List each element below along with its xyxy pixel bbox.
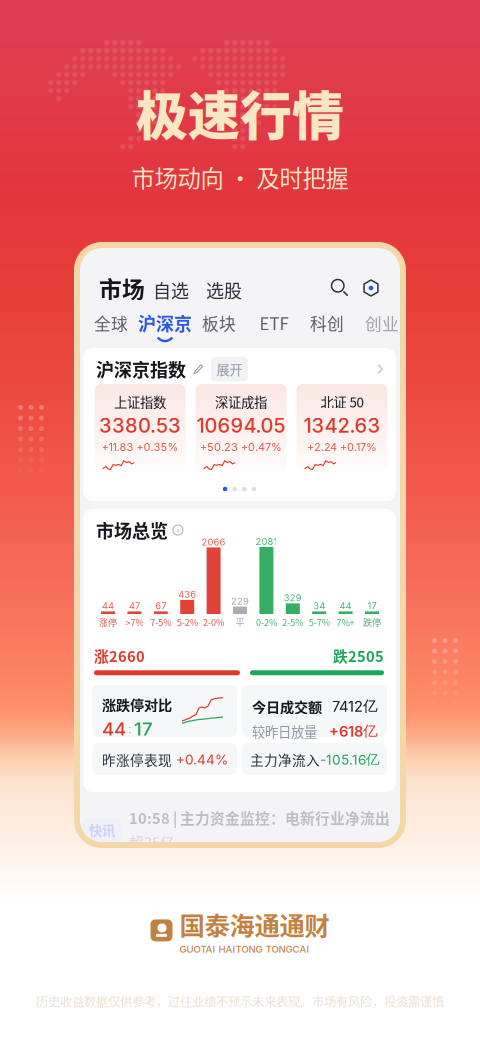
staticText: 44 bbox=[340, 600, 352, 612]
staticText: 10:58 | 主力资金监控：电新行业净流出 bbox=[129, 807, 390, 828]
staticText: 自选 bbox=[153, 277, 189, 303]
button[interactable]: 涨跌停对比 bbox=[92, 685, 237, 737]
button[interactable]: 主力净流入 bbox=[242, 743, 387, 775]
button[interactable]: 创业 bbox=[355, 312, 409, 344]
staticText: +2.24 +0.17% bbox=[307, 440, 377, 454]
staticText: 超35亿 bbox=[129, 831, 175, 852]
staticText: 2-5% bbox=[282, 615, 303, 628]
staticText: 7412亿 bbox=[332, 697, 378, 715]
button[interactable]: 自选 bbox=[153, 278, 191, 302]
staticText: 229 bbox=[231, 595, 249, 607]
button[interactable]: 科创 bbox=[300, 312, 354, 344]
staticText: 涨停 bbox=[99, 615, 117, 628]
staticText: 昨涨停表现 bbox=[102, 750, 172, 769]
staticText: 市场总览 bbox=[96, 517, 168, 543]
button[interactable]: 今日成交额 bbox=[242, 685, 387, 737]
staticText: 历史收益数据仅供参考，过往业绩不预示未来表现。市场有风险，投资需谨慎 bbox=[36, 992, 444, 1010]
button[interactable]: 搜索 bbox=[328, 276, 352, 300]
button[interactable]: 昨涨停表现 bbox=[92, 743, 237, 775]
staticText: 10694.05 bbox=[196, 413, 285, 437]
button[interactable]: 展开 bbox=[211, 357, 248, 381]
staticText: 科创 bbox=[310, 311, 344, 335]
staticText: 44 bbox=[102, 600, 114, 612]
staticText: 涨跌停对比 bbox=[102, 694, 172, 714]
staticText: 市场动向 · 及时把握 bbox=[131, 160, 348, 194]
staticText: 436 bbox=[178, 589, 196, 600]
staticText: 34 bbox=[313, 600, 325, 612]
staticText: 67 bbox=[155, 600, 166, 612]
staticText: 深证成指 bbox=[215, 392, 267, 411]
button[interactable]: 深证成指 bbox=[195, 388, 286, 476]
staticText: 主力净流入 bbox=[250, 750, 320, 769]
staticText: 平 bbox=[235, 615, 244, 628]
staticText: 涨2660 bbox=[94, 645, 145, 666]
staticText: 北证 50 bbox=[320, 392, 363, 411]
staticText: 3380.53 bbox=[99, 413, 181, 437]
staticText: 极速行情 bbox=[136, 75, 344, 150]
staticText: GUOTAI HAITONG TONGCAI bbox=[179, 943, 309, 955]
staticText: ETF bbox=[259, 311, 288, 335]
staticText: +11.83 +0.35% bbox=[101, 440, 178, 454]
button[interactable]: 全球 bbox=[84, 312, 138, 344]
staticText: +50.23 +0.47% bbox=[200, 440, 282, 454]
staticText: 创业 bbox=[365, 311, 399, 335]
staticText: 沪深京指数 bbox=[96, 356, 186, 382]
staticText: 1342.63 bbox=[303, 413, 380, 437]
staticText: 17 bbox=[134, 717, 153, 740]
staticText: 7-5% bbox=[150, 615, 171, 628]
staticText: +0.44% bbox=[176, 751, 228, 768]
staticText: -105.16亿 bbox=[320, 751, 380, 768]
staticText: 板块 bbox=[202, 311, 236, 335]
staticText: 选股 bbox=[206, 277, 242, 303]
button[interactable]: 沪深京 bbox=[138, 312, 192, 344]
staticText: 329 bbox=[284, 592, 302, 604]
staticText: 2081 bbox=[255, 536, 277, 547]
staticText: 2-0% bbox=[203, 615, 224, 628]
staticText: 跌2505 bbox=[333, 645, 384, 666]
staticText: 2066 bbox=[202, 536, 226, 548]
staticText: 47 bbox=[129, 600, 140, 612]
button[interactable]: ETF bbox=[247, 312, 301, 344]
staticText: >7% bbox=[125, 615, 143, 628]
staticText: 5-2% bbox=[177, 615, 198, 628]
button[interactable]: 上证指数 bbox=[94, 388, 185, 476]
staticText: : bbox=[128, 721, 132, 737]
staticText: 沪深京 bbox=[138, 310, 192, 336]
staticText: 17 bbox=[367, 600, 376, 612]
staticText: 0-2% bbox=[256, 615, 277, 628]
button[interactable]: 设置 bbox=[359, 276, 383, 300]
staticText: 展开 bbox=[216, 359, 242, 379]
staticText: 44 bbox=[102, 717, 126, 740]
staticText: 快讯 bbox=[89, 820, 115, 839]
staticText: 国泰海通通财 bbox=[179, 906, 329, 942]
staticText: 5-7% bbox=[309, 615, 330, 628]
staticText: +618亿 bbox=[329, 722, 378, 740]
staticText: 上证指数 bbox=[114, 392, 166, 411]
button[interactable]: 市场 bbox=[99, 276, 143, 300]
staticText: 跌停 bbox=[363, 615, 381, 628]
staticText: 较昨日放量 bbox=[252, 721, 317, 741]
button[interactable]: 选股 bbox=[206, 278, 244, 302]
staticText: 市场 bbox=[99, 272, 145, 304]
button[interactable]: 板块 bbox=[192, 312, 246, 344]
staticText: 7%+ bbox=[337, 615, 355, 628]
button[interactable]: 北证 50 bbox=[296, 388, 387, 476]
staticText: 全球 bbox=[94, 311, 128, 335]
staticText: 今日成交额 bbox=[252, 696, 322, 716]
